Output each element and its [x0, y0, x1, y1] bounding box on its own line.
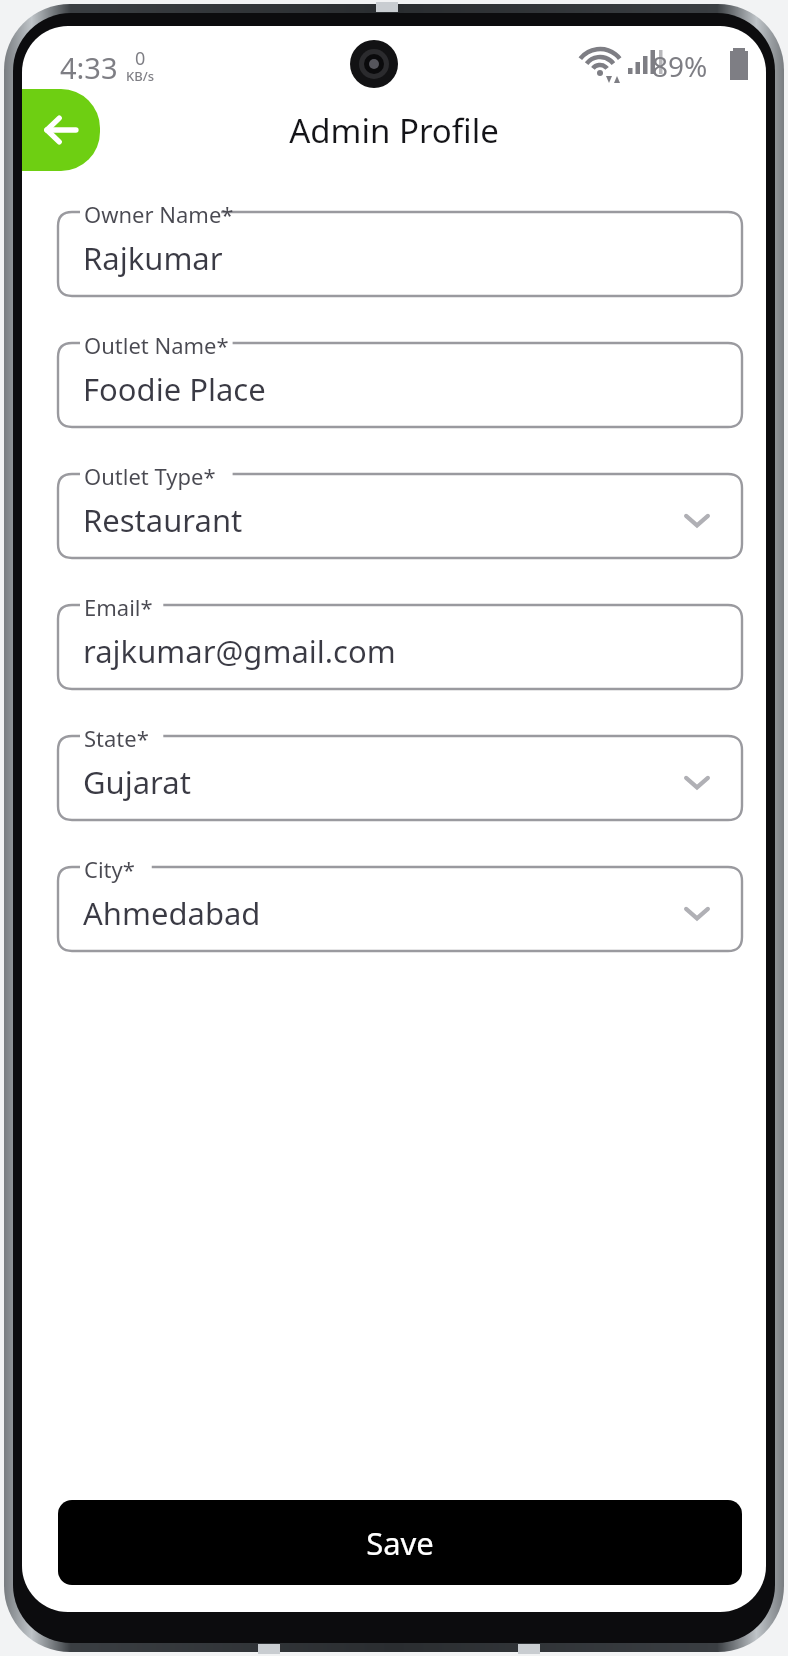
button[interactable]: Back [22, 89, 100, 171]
button[interactable]: Owner Name* [58, 212, 742, 296]
button[interactable]: Outlet Name* [58, 343, 742, 427]
staticText: Admin Profile [289, 108, 499, 153]
staticText: Rajkumar [83, 237, 223, 279]
staticText: Email* [84, 592, 153, 622]
staticText: rajkumar@gmail.com [83, 630, 396, 672]
button[interactable]: State* [58, 736, 742, 820]
staticText: KB/s [126, 67, 155, 85]
staticText: 0 [135, 46, 146, 71]
staticText: 89% [652, 47, 708, 85]
staticText: Outlet Name* [84, 330, 229, 360]
staticText: Foodie Place [83, 368, 266, 410]
button[interactable]: Save [58, 1500, 742, 1585]
staticText: State* [84, 723, 149, 753]
staticText: 4:33 [60, 48, 118, 87]
staticText: Restaurant [83, 499, 243, 541]
staticText: Gujarat [83, 761, 191, 803]
staticText: City* [84, 854, 135, 884]
button[interactable]: Outlet Type* [58, 474, 742, 558]
staticText: Save [366, 1522, 434, 1564]
button[interactable]: Email* [58, 605, 742, 689]
button[interactable]: City* [58, 867, 742, 951]
staticText: Ahmedabad [83, 892, 261, 934]
staticText: Owner Name* [84, 199, 234, 229]
staticText: Outlet Type* [84, 461, 216, 491]
